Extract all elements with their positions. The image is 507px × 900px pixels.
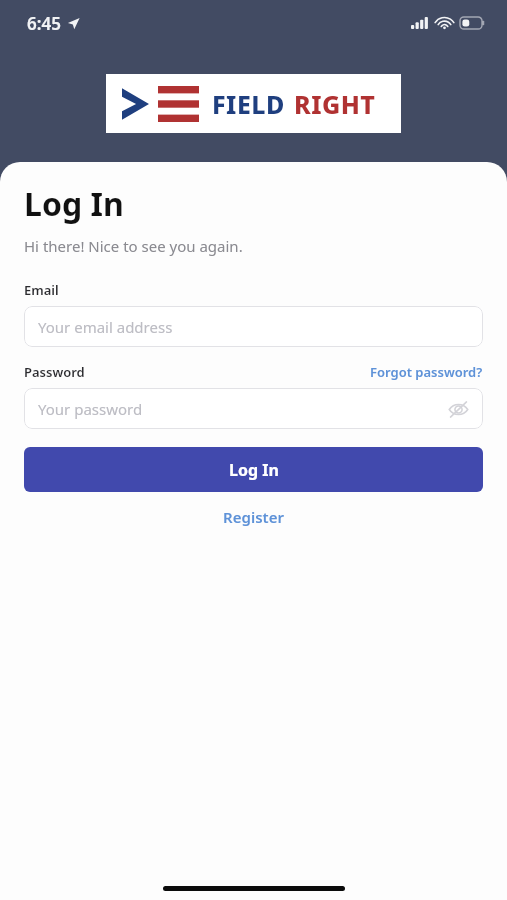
staticText: 6:45 (27, 12, 61, 35)
staticText: Your password (38, 399, 143, 419)
button[interactable]: Your password (24, 388, 483, 429)
staticText: Log In (229, 459, 279, 481)
button[interactable]: Log In (24, 447, 483, 492)
staticText: Log In (24, 182, 124, 226)
button[interactable]: Register (24, 507, 483, 527)
staticText: Your email address (38, 317, 173, 337)
button[interactable]: Show password (443, 394, 473, 424)
staticText: Forgot password? (370, 363, 483, 381)
button[interactable]: Forgot password? (370, 363, 483, 381)
staticText: Password (24, 363, 85, 381)
staticText: Hi there! Nice to see you again. (24, 236, 243, 256)
staticText: FIELD (212, 87, 285, 121)
staticText: Email (24, 281, 59, 299)
staticText: Register (223, 507, 284, 527)
staticText: RIGHT (294, 87, 376, 121)
button[interactable]: Your email address (24, 306, 483, 347)
